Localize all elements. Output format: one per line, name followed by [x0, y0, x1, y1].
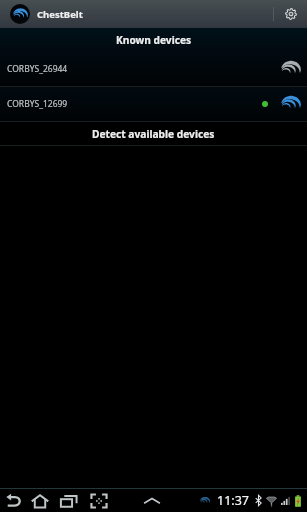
staticText: 11:37: [217, 492, 249, 509]
staticText: Detect available devices: [92, 127, 215, 141]
staticText: CORBYS_12699: [7, 98, 68, 110]
button[interactable]: CORBYS_12699: [0, 87, 307, 121]
button[interactable]: Back: [0, 489, 27, 512]
staticText: Known devices: [116, 33, 192, 47]
button[interactable]: Show navigation: [140, 489, 164, 512]
button[interactable]: Home: [27, 489, 53, 512]
button[interactable]: CORBYS_26944: [0, 51, 307, 86]
button[interactable]: Settings: [274, 0, 307, 28]
button[interactable]: Recent apps: [53, 489, 84, 512]
staticText: ChestBelt: [37, 8, 83, 21]
staticText: CORBYS_26944: [7, 63, 68, 75]
button[interactable]: Fit to screen: [84, 489, 114, 512]
button[interactable]: Detect available devices: [0, 122, 307, 145]
